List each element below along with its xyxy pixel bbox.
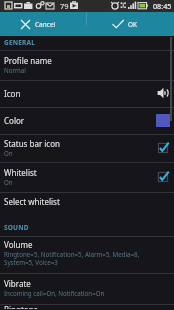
button[interactable]: Whitelist — [0, 163, 174, 192]
button[interactable]: Sound — [156, 86, 170, 100]
staticText: Ringtone=5, Notification=5, Alarm=5, Med… — [4, 250, 140, 267]
staticText: 79 — [60, 1, 69, 11]
button[interactable]: Status bar icon — [0, 135, 174, 162]
button[interactable]: OK — [87, 12, 174, 36]
button[interactable]: Cancel — [0, 12, 86, 36]
button[interactable]: Vibrate — [0, 274, 174, 304]
staticText: Volume — [4, 239, 33, 250]
button[interactable]: Volume — [0, 237, 174, 273]
staticText: Cancel — [35, 20, 56, 29]
staticText: Icon — [4, 88, 21, 99]
button[interactable]: Profile name — [0, 51, 174, 80]
button[interactable]: Ringtone — [0, 305, 174, 310]
staticText: Color — [4, 115, 25, 126]
staticText: On — [4, 149, 13, 157]
staticText: Ringtone — [4, 304, 39, 309]
staticText: Incoming call=On, Notification=On — [4, 289, 105, 297]
button[interactable]: Icon — [0, 81, 174, 107]
button[interactable]: Color — [0, 108, 174, 134]
button[interactable]: Toggle — [156, 170, 170, 184]
staticText: Vibrate — [4, 278, 31, 289]
button[interactable]: Select whitelist — [0, 193, 174, 215]
staticText: Profile name — [4, 55, 52, 66]
staticText: 08:45 — [153, 1, 172, 11]
button[interactable]: Toggle — [156, 141, 170, 155]
staticText: On — [4, 178, 13, 186]
staticText: SOUND — [4, 223, 29, 232]
staticText: Whitelist — [4, 167, 37, 178]
staticText: GENERAL — [4, 38, 36, 47]
staticText: Normal — [4, 66, 26, 74]
staticText: Status bar icon — [4, 138, 60, 149]
staticText: OK — [128, 20, 138, 29]
staticText: Select whitelist — [4, 196, 60, 207]
